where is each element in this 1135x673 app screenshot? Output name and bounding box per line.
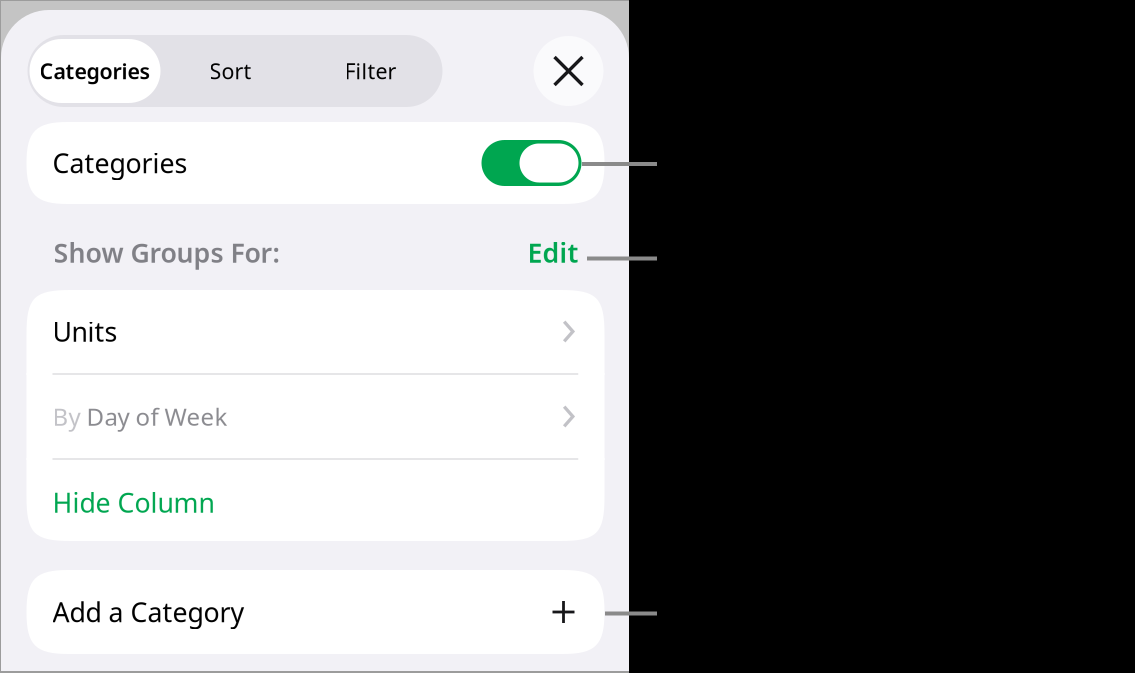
staticText: Day of Week [80, 401, 227, 432]
staticText: Edit [527, 235, 578, 270]
button[interactable]: Categories [481, 140, 581, 186]
staticText: Categories [39, 57, 150, 85]
button[interactable]: Categories [29, 39, 160, 103]
staticText: Hide Column [52, 485, 214, 520]
staticText: Units [52, 314, 117, 349]
button[interactable]: Edit [509, 227, 578, 278]
button[interactable]: Categories [26, 122, 604, 204]
button[interactable]: By [26, 375, 604, 458]
button[interactable]: Units [26, 290, 604, 373]
staticText: Categories [52, 145, 187, 181]
button[interactable]: Add a Category [26, 570, 604, 654]
button[interactable]: Filter [300, 39, 440, 103]
staticText: Filter [344, 57, 396, 85]
staticText: By [52, 401, 80, 432]
staticText: Show Groups For: [53, 235, 279, 270]
staticText: Add a Category [52, 594, 244, 630]
button[interactable]: Close [533, 36, 603, 106]
button[interactable]: Sort [160, 39, 300, 103]
staticText: Sort [209, 57, 251, 85]
button[interactable]: Hide Column [26, 460, 604, 541]
